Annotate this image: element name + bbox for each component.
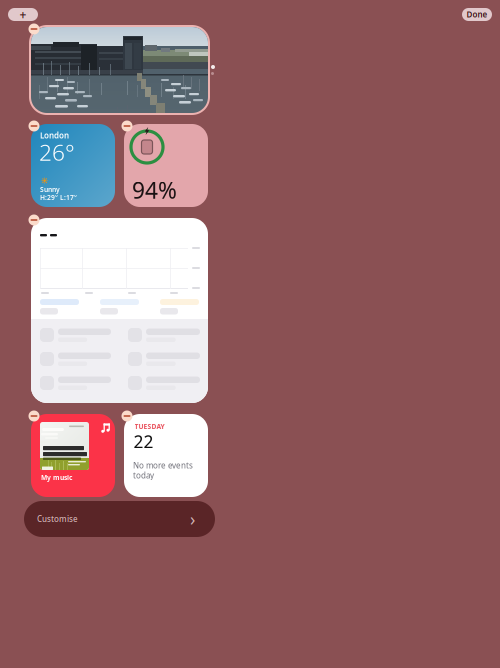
button[interactable]: Remove widget [121, 410, 132, 421]
button[interactable]: Remove widget [28, 23, 39, 34]
button[interactable]: Customise [24, 501, 215, 537]
staticText: No more events [133, 460, 193, 471]
button[interactable]: Add widget [8, 8, 38, 21]
staticText: Done [466, 9, 487, 20]
button[interactable]: Remove widget [28, 410, 39, 421]
staticText: Customise [37, 514, 78, 524]
staticText: London [40, 130, 69, 141]
button[interactable]: Remove widget [28, 214, 39, 225]
button[interactable]: Remove widget [121, 120, 132, 131]
staticText: 26° [39, 137, 75, 167]
staticText: 94% [132, 175, 177, 205]
staticText: 22 [133, 430, 153, 453]
staticText: Sunny [40, 185, 60, 194]
staticText: My music [41, 473, 72, 482]
staticText: today [133, 470, 154, 481]
staticText: H:29° L:17° [40, 193, 77, 202]
button[interactable]: Remove widget [28, 120, 39, 131]
staticText: TUESDAY [134, 422, 164, 431]
staticText: + [19, 6, 26, 22]
staticText: › [190, 507, 195, 530]
button[interactable]: Done [462, 8, 492, 21]
